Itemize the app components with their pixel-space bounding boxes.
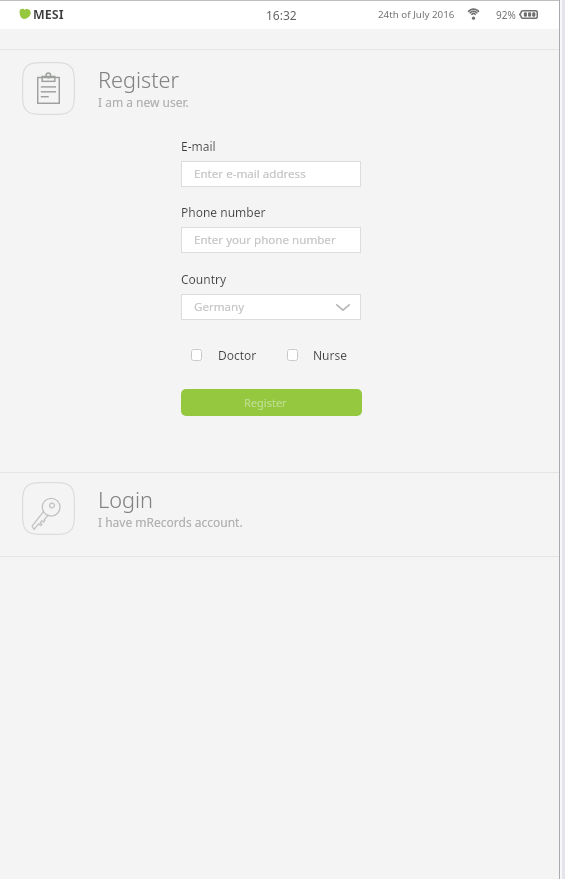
staticText: Phone number [181, 204, 266, 220]
staticText: Register [98, 65, 180, 95]
button[interactable]: Germany [181, 294, 361, 320]
staticText: Enter e-mail address [194, 166, 306, 182]
staticText: I am a new user. [98, 94, 189, 110]
staticText: Country [181, 271, 227, 287]
staticText: 92% [496, 8, 516, 22]
staticText: 24th of July 2016 [378, 8, 455, 21]
other: Wi-Fi [467, 9, 480, 19]
other: Battery 92 percent [519, 10, 538, 19]
staticText: Nurse [313, 347, 348, 363]
staticText: 16:32 [266, 7, 297, 23]
staticText: MESI [33, 6, 64, 23]
staticText: I have mRecords account. [98, 514, 243, 530]
button[interactable]: Login [22, 482, 75, 535]
button[interactable]: Doctor [191, 344, 257, 366]
other: Register [22, 62, 75, 115]
staticText: E-mail [181, 138, 216, 154]
staticText: Enter your phone number [194, 232, 336, 248]
staticText: Doctor [218, 347, 257, 363]
staticText: Germany [194, 299, 245, 315]
button[interactable]: Register [181, 389, 362, 416]
other: Login [22, 482, 75, 535]
other: Select country [336, 304, 350, 311]
button[interactable]: Nurse [287, 344, 348, 366]
staticText: Register [244, 395, 287, 410]
staticText: Login [98, 485, 153, 515]
button[interactable]: Register [22, 62, 75, 115]
button[interactable]: Enter your phone number [181, 227, 361, 253]
button[interactable]: Enter e-mail address [181, 161, 361, 187]
